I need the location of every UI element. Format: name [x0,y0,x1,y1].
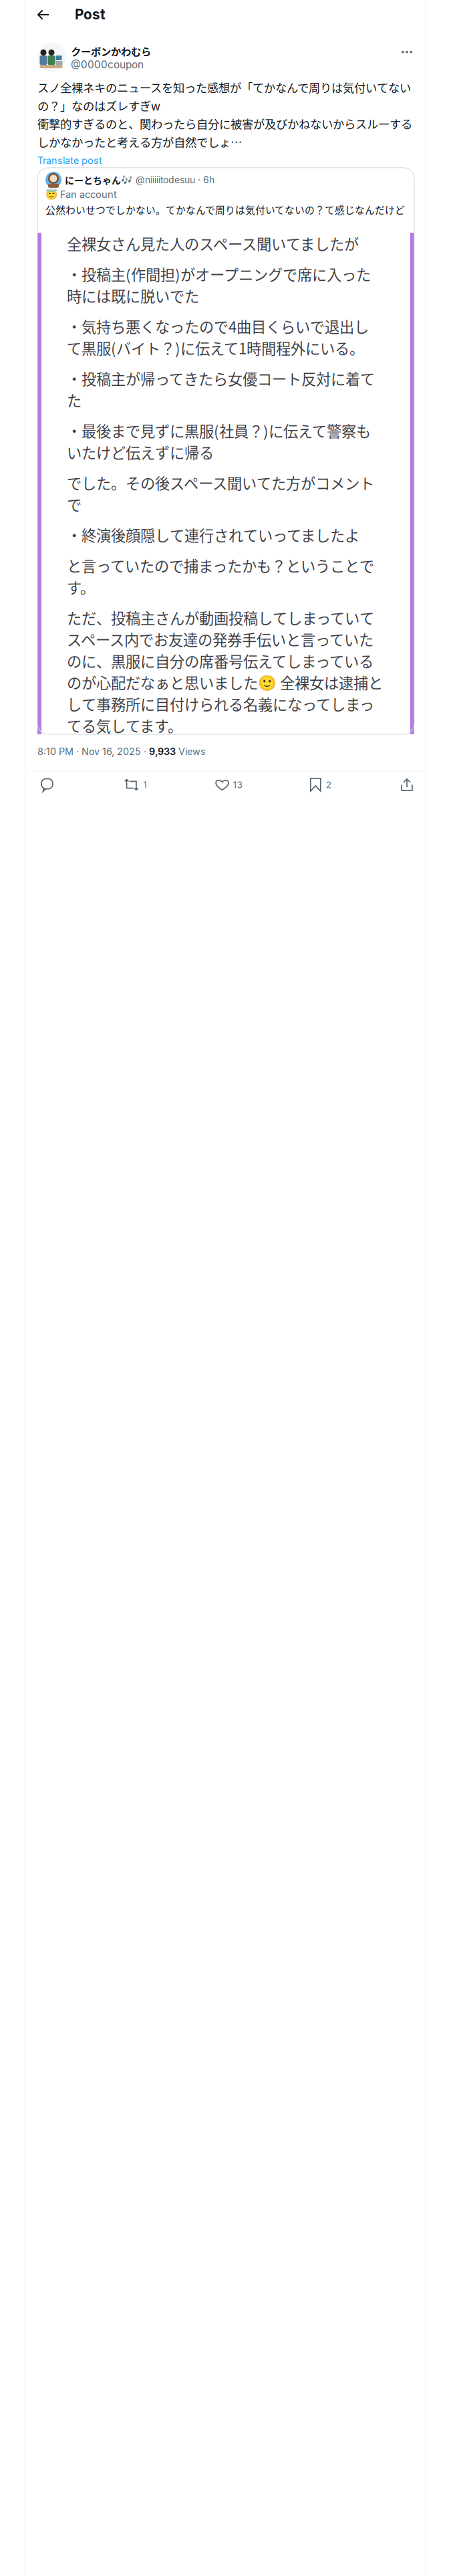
staticText: 公然わいせつでしかない。てかなんで周りは気付いてないの？て感じなんだけど [45,202,405,217]
staticText: @0000coupon [71,58,144,71]
staticText: 全裸女さん見た人のスペース聞いてましたが [67,233,359,254]
staticText: しかなかったと考える方が自然でしょ… [37,133,242,150]
staticText: にーとちゃん🎶 [65,173,132,187]
staticText: てる気してます。 [67,715,182,736]
staticText: のが心配だなぁと思いました🙂 全裸女は逮捕と [67,672,383,693]
button[interactable]: Translate post [37,150,102,168]
staticText: @niiiiitodesuu · 6h [136,174,214,185]
staticText: 9,933 [149,746,176,757]
staticText: た [67,389,82,411]
staticText: ただ、投稿主さんが動画投稿してしまっていて [67,607,374,628]
button[interactable]: クーポンかわむら [37,43,151,72]
staticText: スノ全裸ネキのニュースを知った感想が「てかなんで周りは気付いてない [37,79,411,96]
staticText: でした。その後スペース聞いてた方がコメント [67,472,374,493]
button[interactable]: Like [203,772,254,798]
staticText: ・投稿主が帰ってきたら女優コート反対に着て [67,368,375,389]
staticText: ・最後まで見ずに黒服(社員？)に伝えて警察も [67,420,371,441]
button[interactable]: Back [26,0,75,29]
staticText: して事務所に目付けられる名義になってしまっ [67,693,374,715]
staticText: スペース内でお友達の発券手伝いと言っていた [67,628,373,650]
staticText: 8:10 PM · Nov 16, 2025 · [37,746,149,757]
staticText: ・投稿主(作間担)がオープニングで席に入った [67,263,371,285]
staticText: 13 [233,779,242,790]
staticText: ・気持ち悪くなったので4曲目くらいで退出し [67,316,369,337]
staticText: 😇 Fan account [45,188,117,200]
staticText: と言っていたので捕まったかも？ということで [67,555,374,576]
staticText: Post [75,6,106,23]
staticText: Views [176,746,206,757]
staticText: Translate post [37,155,102,166]
staticText: 時には既に脱いでた [67,285,199,306]
staticText: 1 [143,779,147,790]
staticText: いたけど伝えずに帰る [67,441,214,463]
staticText: 2 [326,779,331,790]
staticText: クーポンかわむら [71,44,151,58]
button[interactable]: Reply [26,771,68,798]
button[interactable]: Repost [112,772,159,798]
staticText: で [67,494,82,515]
button[interactable]: More [392,43,420,61]
staticText: て黒服(バイト？)に伝えて1時間程外にいる。 [67,337,364,359]
button[interactable]: Bookmark [299,772,343,798]
button[interactable]: Share [388,771,426,798]
staticText: ・終演後顔隠して連行されていってましたよ [67,524,359,546]
staticText: 衝撃的すぎるのと、関わったら自分に被害が及びかねないからスルーする [37,115,412,132]
button[interactable]: にーとちゃん🎶 [37,168,414,734]
staticText: す。 [67,576,95,598]
staticText: のに、黒服に自分の席番号伝えてしまっている [67,650,373,671]
staticText: の？」なのはズレすぎw [37,97,160,114]
